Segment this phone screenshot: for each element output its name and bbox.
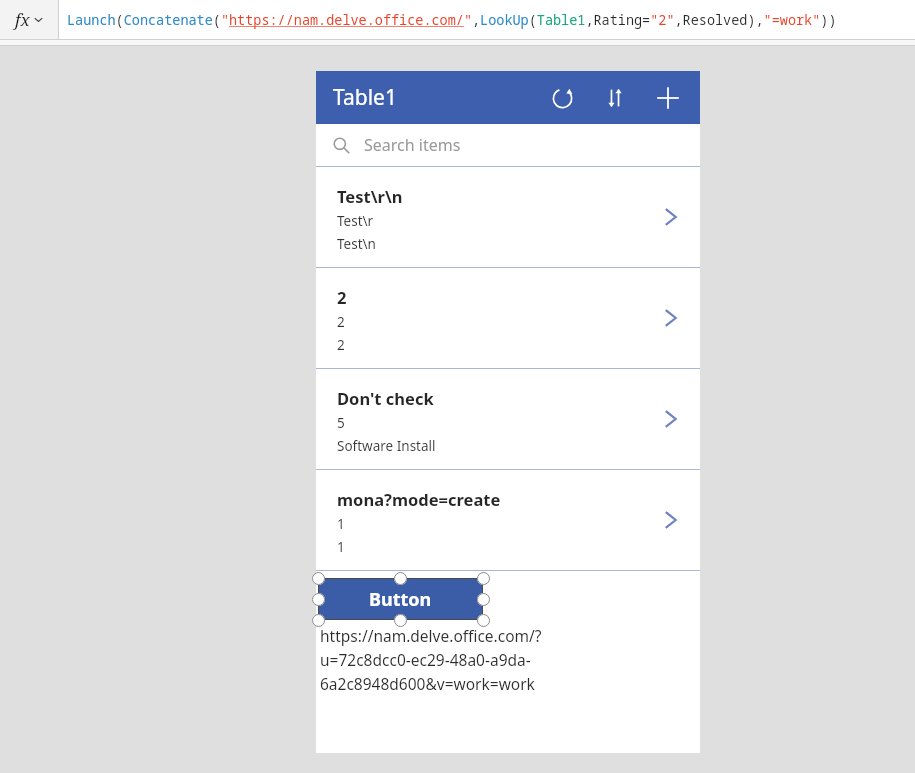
staticText: Test\n <box>337 235 376 253</box>
staticText: 2 <box>337 336 345 354</box>
staticText: 1 <box>337 515 345 533</box>
staticText: 2 <box>337 286 347 308</box>
staticText: 2 <box>337 313 345 331</box>
button[interactable]: Search items <box>316 124 700 166</box>
staticText: 1 <box>337 538 345 556</box>
staticText: fx <box>15 8 30 31</box>
staticText: Don't check <box>337 387 434 409</box>
button[interactable]: Add item <box>650 80 686 116</box>
staticText: Test\r <box>337 212 374 230</box>
button[interactable]: Button <box>318 578 483 620</box>
button[interactable]: Sort <box>597 80 633 116</box>
button[interactable]: Refresh <box>544 80 580 116</box>
staticText: u=72c8dcc0-ec29-48a0-a9da- <box>320 649 531 670</box>
button[interactable]: Formula bar options <box>0 0 58 39</box>
staticText: Software Install <box>337 437 436 455</box>
staticText: Table1 <box>333 83 397 112</box>
staticText: 6a2c8948d600&v=work=work <box>320 673 535 694</box>
staticText: Search items <box>364 134 461 156</box>
button[interactable]: mona?mode=create <box>316 470 700 570</box>
staticText: https://nam.delve.office.com/? <box>320 625 542 646</box>
button[interactable]: 2 <box>316 268 700 368</box>
staticText: Test\r\n <box>337 185 403 207</box>
staticText: Launch(Concatenate("https://nam.delve.of… <box>67 11 837 29</box>
staticText: 5 <box>337 414 345 432</box>
staticText: mona?mode=create <box>337 488 501 510</box>
button[interactable]: Test\r\n <box>316 167 700 267</box>
button[interactable]: Don't check <box>316 369 700 469</box>
staticText: Button <box>369 587 432 612</box>
